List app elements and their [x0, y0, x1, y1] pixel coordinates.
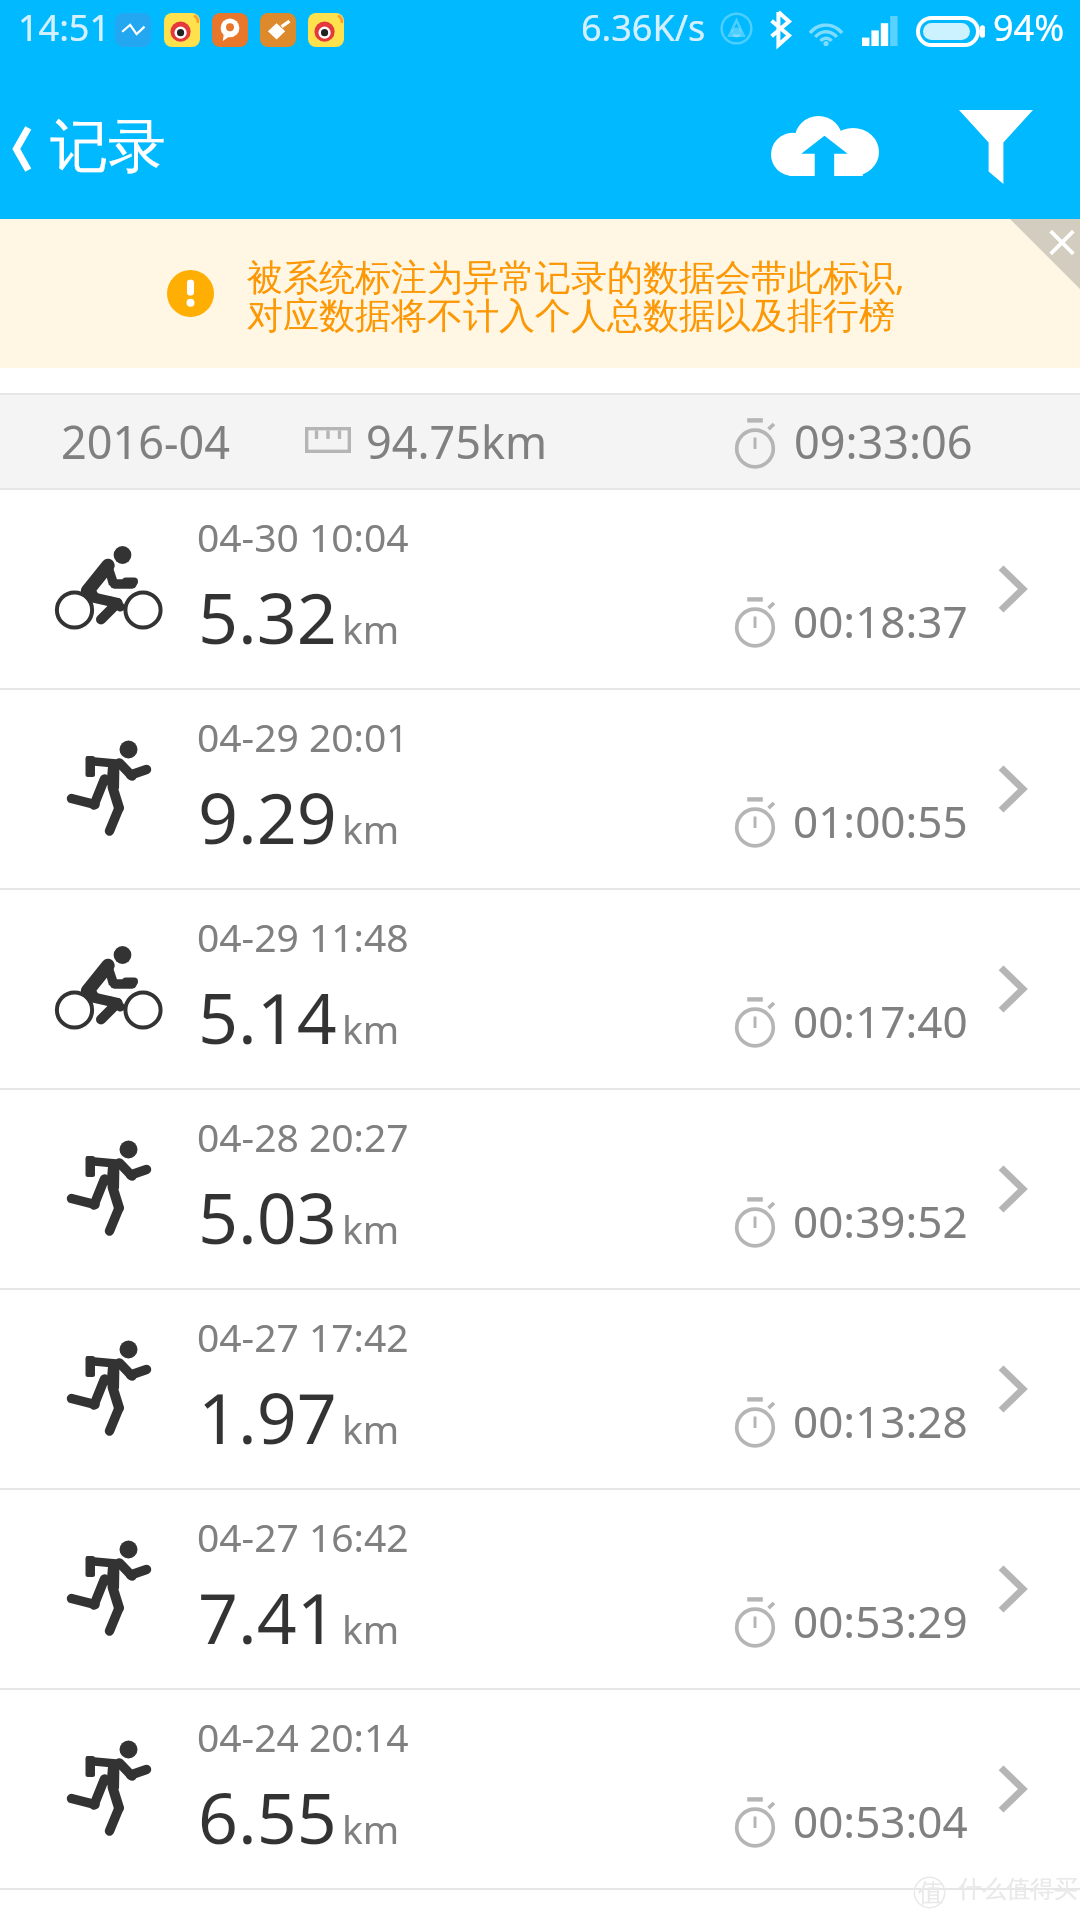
staticText: 09:33:06	[794, 411, 973, 472]
staticText: 1.97	[198, 1369, 337, 1464]
button[interactable]: Back	[2, 112, 166, 185]
staticText: 5.32	[198, 569, 337, 664]
button[interactable]: 04-29 11:48	[0, 890, 1080, 1088]
staticText: 04-28 20:27	[197, 1110, 409, 1163]
button[interactable]: 04-30 10:04	[0, 490, 1080, 688]
button[interactable]: 04-24 20:14	[0, 1690, 1080, 1888]
staticText: 00:39:52	[793, 1191, 968, 1251]
staticText: km	[342, 1002, 400, 1055]
staticText: 什么值得买	[958, 1874, 1078, 1904]
staticText: 5.03	[198, 1169, 337, 1264]
staticText: 04-27 17:42	[197, 1310, 409, 1363]
button[interactable]: 04-29 20:01	[0, 690, 1080, 888]
staticText: 04-27 16:42	[197, 1510, 409, 1563]
staticText: 对应数据将不计入个人总数据以及排行榜	[247, 293, 895, 338]
staticText: 01:00:55	[793, 791, 968, 851]
staticText: 94%	[993, 3, 1065, 52]
staticText: km	[342, 1802, 400, 1855]
staticText: 00:53:04	[793, 1791, 968, 1851]
staticText: 记录	[50, 110, 166, 183]
staticText: 2016-04	[61, 411, 230, 472]
staticText: km	[342, 1602, 400, 1655]
staticText: km	[342, 802, 400, 855]
staticText: km	[342, 1202, 400, 1255]
staticText: 00:17:40	[793, 991, 968, 1051]
staticText: km	[342, 602, 400, 655]
staticText: 00:18:37	[793, 591, 968, 651]
staticText: 04-24 20:14	[197, 1710, 409, 1763]
other: Back	[10, 126, 31, 172]
staticText: 值	[918, 1877, 943, 1908]
staticText: 6.36K/s	[581, 3, 706, 52]
staticText: 5.14	[198, 969, 337, 1064]
button[interactable]: Close	[1010, 219, 1080, 289]
staticText: 14:51	[18, 3, 111, 52]
staticText: 被系统标注为异常记录的数据会带此标识,	[247, 252, 905, 301]
button[interactable]: Upload to cloud	[760, 86, 890, 206]
staticText: 00:53:29	[793, 1591, 968, 1651]
staticText: 04-29 11:48	[197, 910, 409, 963]
button[interactable]: 04-27 17:42	[0, 1290, 1080, 1488]
staticText: 04-29 20:01	[197, 710, 409, 763]
staticText: 04-30 10:04	[197, 510, 409, 563]
staticText: 00:13:28	[793, 1391, 968, 1451]
staticText: 6.55	[198, 1769, 337, 1864]
staticText: 7.41	[198, 1569, 337, 1664]
button[interactable]: 04-28 20:27	[0, 1090, 1080, 1288]
staticText: 94.75km	[366, 411, 548, 472]
button[interactable]: 04-27 16:42	[0, 1490, 1080, 1688]
staticText: km	[342, 1402, 400, 1455]
staticText: 9.29	[198, 769, 337, 864]
button[interactable]: Filter	[941, 82, 1051, 212]
